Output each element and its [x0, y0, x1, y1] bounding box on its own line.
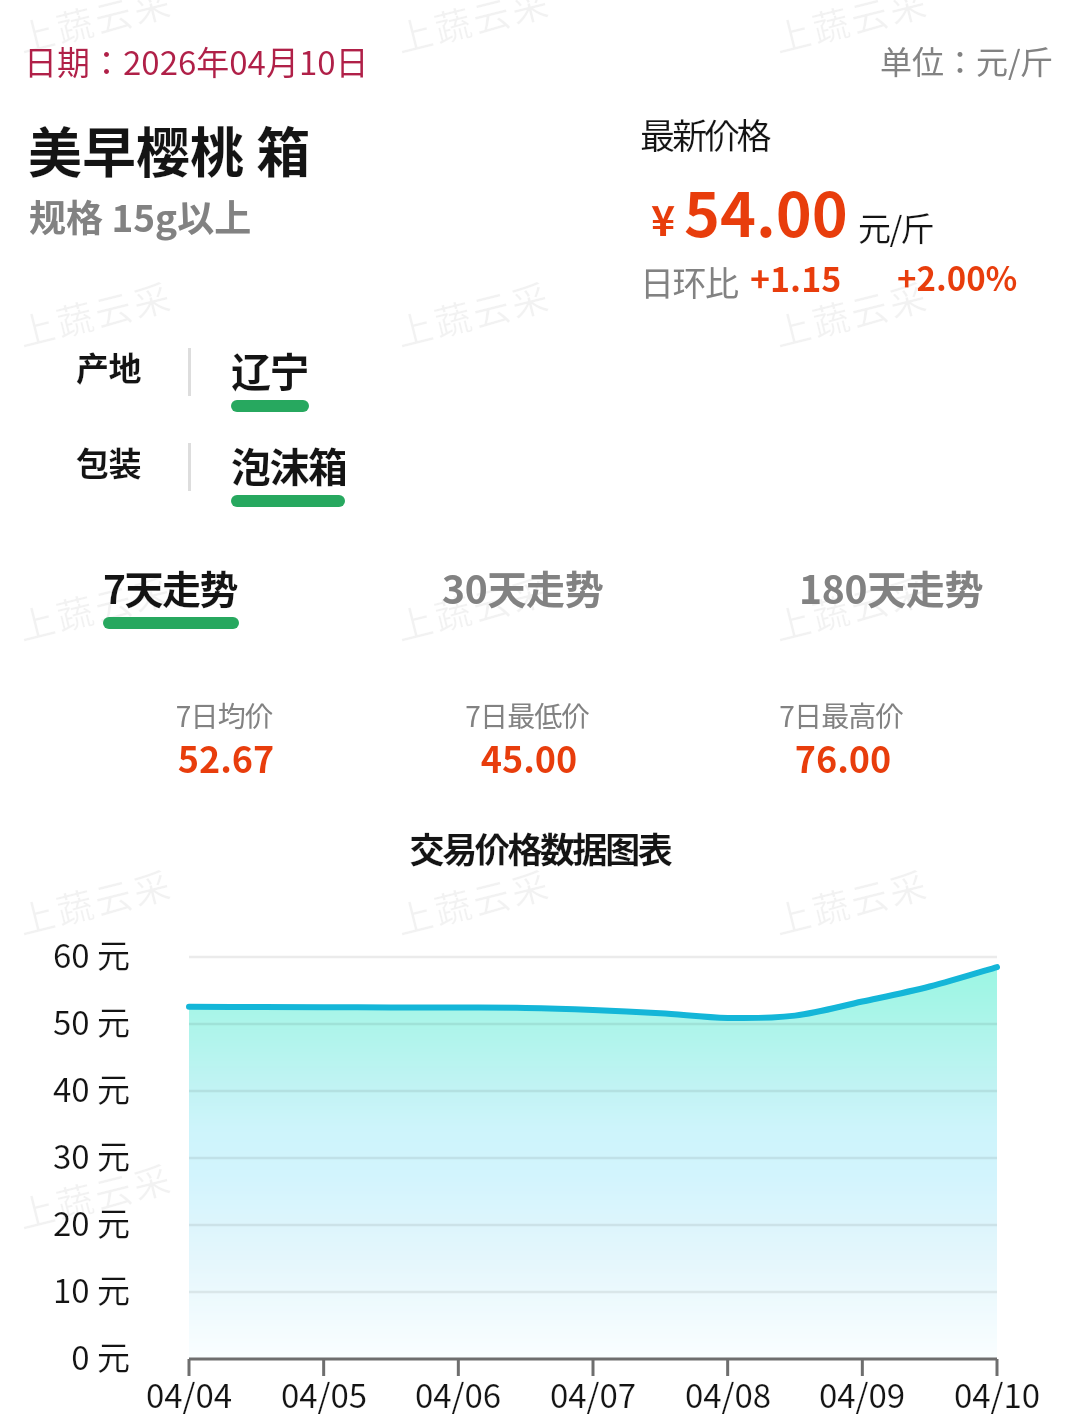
- staticText: 04/06: [368, 1370, 548, 1418]
- staticText: 7日最低价: [357, 695, 697, 736]
- staticText: 7日均价: [54, 695, 394, 736]
- staticText: +2.00%: [897, 253, 1018, 301]
- staticText: 180天走势: [799, 559, 984, 615]
- button[interactable]: 辽宁: [231, 341, 309, 412]
- staticText: 60 元: [2, 930, 130, 978]
- staticText: 76.00: [673, 731, 1013, 783]
- staticText: 上蔬云采: [12, 1149, 179, 1238]
- staticText: 上蔬云采: [768, 267, 935, 356]
- staticText: 产地: [76, 343, 141, 391]
- other: 交易价格数据图表: [0, 0, 1080, 1418]
- staticText: 元/斤: [858, 203, 933, 251]
- staticText: 7天走势: [103, 559, 238, 615]
- staticText: 包装: [76, 438, 141, 486]
- staticText: 上蔬云采: [390, 1149, 557, 1238]
- staticText: 上蔬云采: [390, 561, 557, 650]
- button[interactable]: 7日最高价: [671, 695, 1011, 788]
- staticText: 规格 15g以上: [29, 189, 252, 243]
- staticText: 上蔬云采: [768, 1149, 935, 1238]
- staticText: +1.15: [750, 253, 842, 302]
- staticText: ¥: [651, 188, 676, 247]
- staticText: 交易价格数据图表: [0, 822, 1080, 873]
- staticText: 04/07: [503, 1370, 683, 1418]
- staticText: 单位：元/斤: [880, 37, 1053, 83]
- staticText: 40 元: [2, 1064, 130, 1112]
- staticText: 04/04: [99, 1370, 279, 1418]
- staticText: 上蔬云采: [768, 0, 935, 62]
- button[interactable]: 7天走势: [103, 559, 239, 641]
- staticText: 美早樱桃 箱: [28, 110, 311, 188]
- staticText: 04/10: [907, 1370, 1080, 1418]
- staticText: 30天走势: [442, 559, 604, 615]
- staticText: 上蔬云采: [768, 855, 935, 944]
- staticText: 泡沫箱: [231, 436, 345, 494]
- staticText: 7日最高价: [671, 695, 1011, 736]
- staticText: 上蔬云采: [390, 855, 557, 944]
- staticText: 20 元: [2, 1198, 130, 1246]
- staticText: 上蔬云采: [12, 0, 179, 62]
- staticText: 50 元: [2, 997, 130, 1045]
- staticText: 04/09: [772, 1370, 952, 1418]
- staticText: 上蔬云采: [12, 855, 179, 944]
- staticText: 上蔬云采: [390, 267, 557, 356]
- staticText: 上蔬云采: [12, 267, 179, 356]
- staticText: 04/05: [234, 1370, 414, 1418]
- staticText: 上蔬云采: [390, 0, 557, 62]
- button[interactable]: 7日均价: [54, 695, 394, 788]
- button[interactable]: 7日最低价: [357, 695, 697, 788]
- staticText: 日期：2026年04月10日: [24, 37, 369, 85]
- staticText: 上蔬云采: [12, 561, 179, 650]
- staticText: 辽宁: [231, 341, 308, 399]
- staticText: 52.67: [56, 731, 396, 783]
- staticText: 0 元: [2, 1332, 130, 1380]
- button[interactable]: 泡沫箱: [231, 436, 345, 507]
- staticText: 45.00: [359, 731, 699, 783]
- button[interactable]: 30天走势: [442, 559, 604, 641]
- staticText: 日环比: [640, 257, 738, 306]
- staticText: 30 元: [2, 1131, 130, 1179]
- button[interactable]: 180天走势: [799, 559, 984, 641]
- staticText: 54.00: [684, 166, 848, 254]
- staticText: 04/08: [638, 1370, 818, 1418]
- staticText: 上蔬云采: [768, 561, 935, 650]
- staticText: 最新价格: [640, 108, 769, 159]
- staticText: 10 元: [2, 1265, 130, 1313]
